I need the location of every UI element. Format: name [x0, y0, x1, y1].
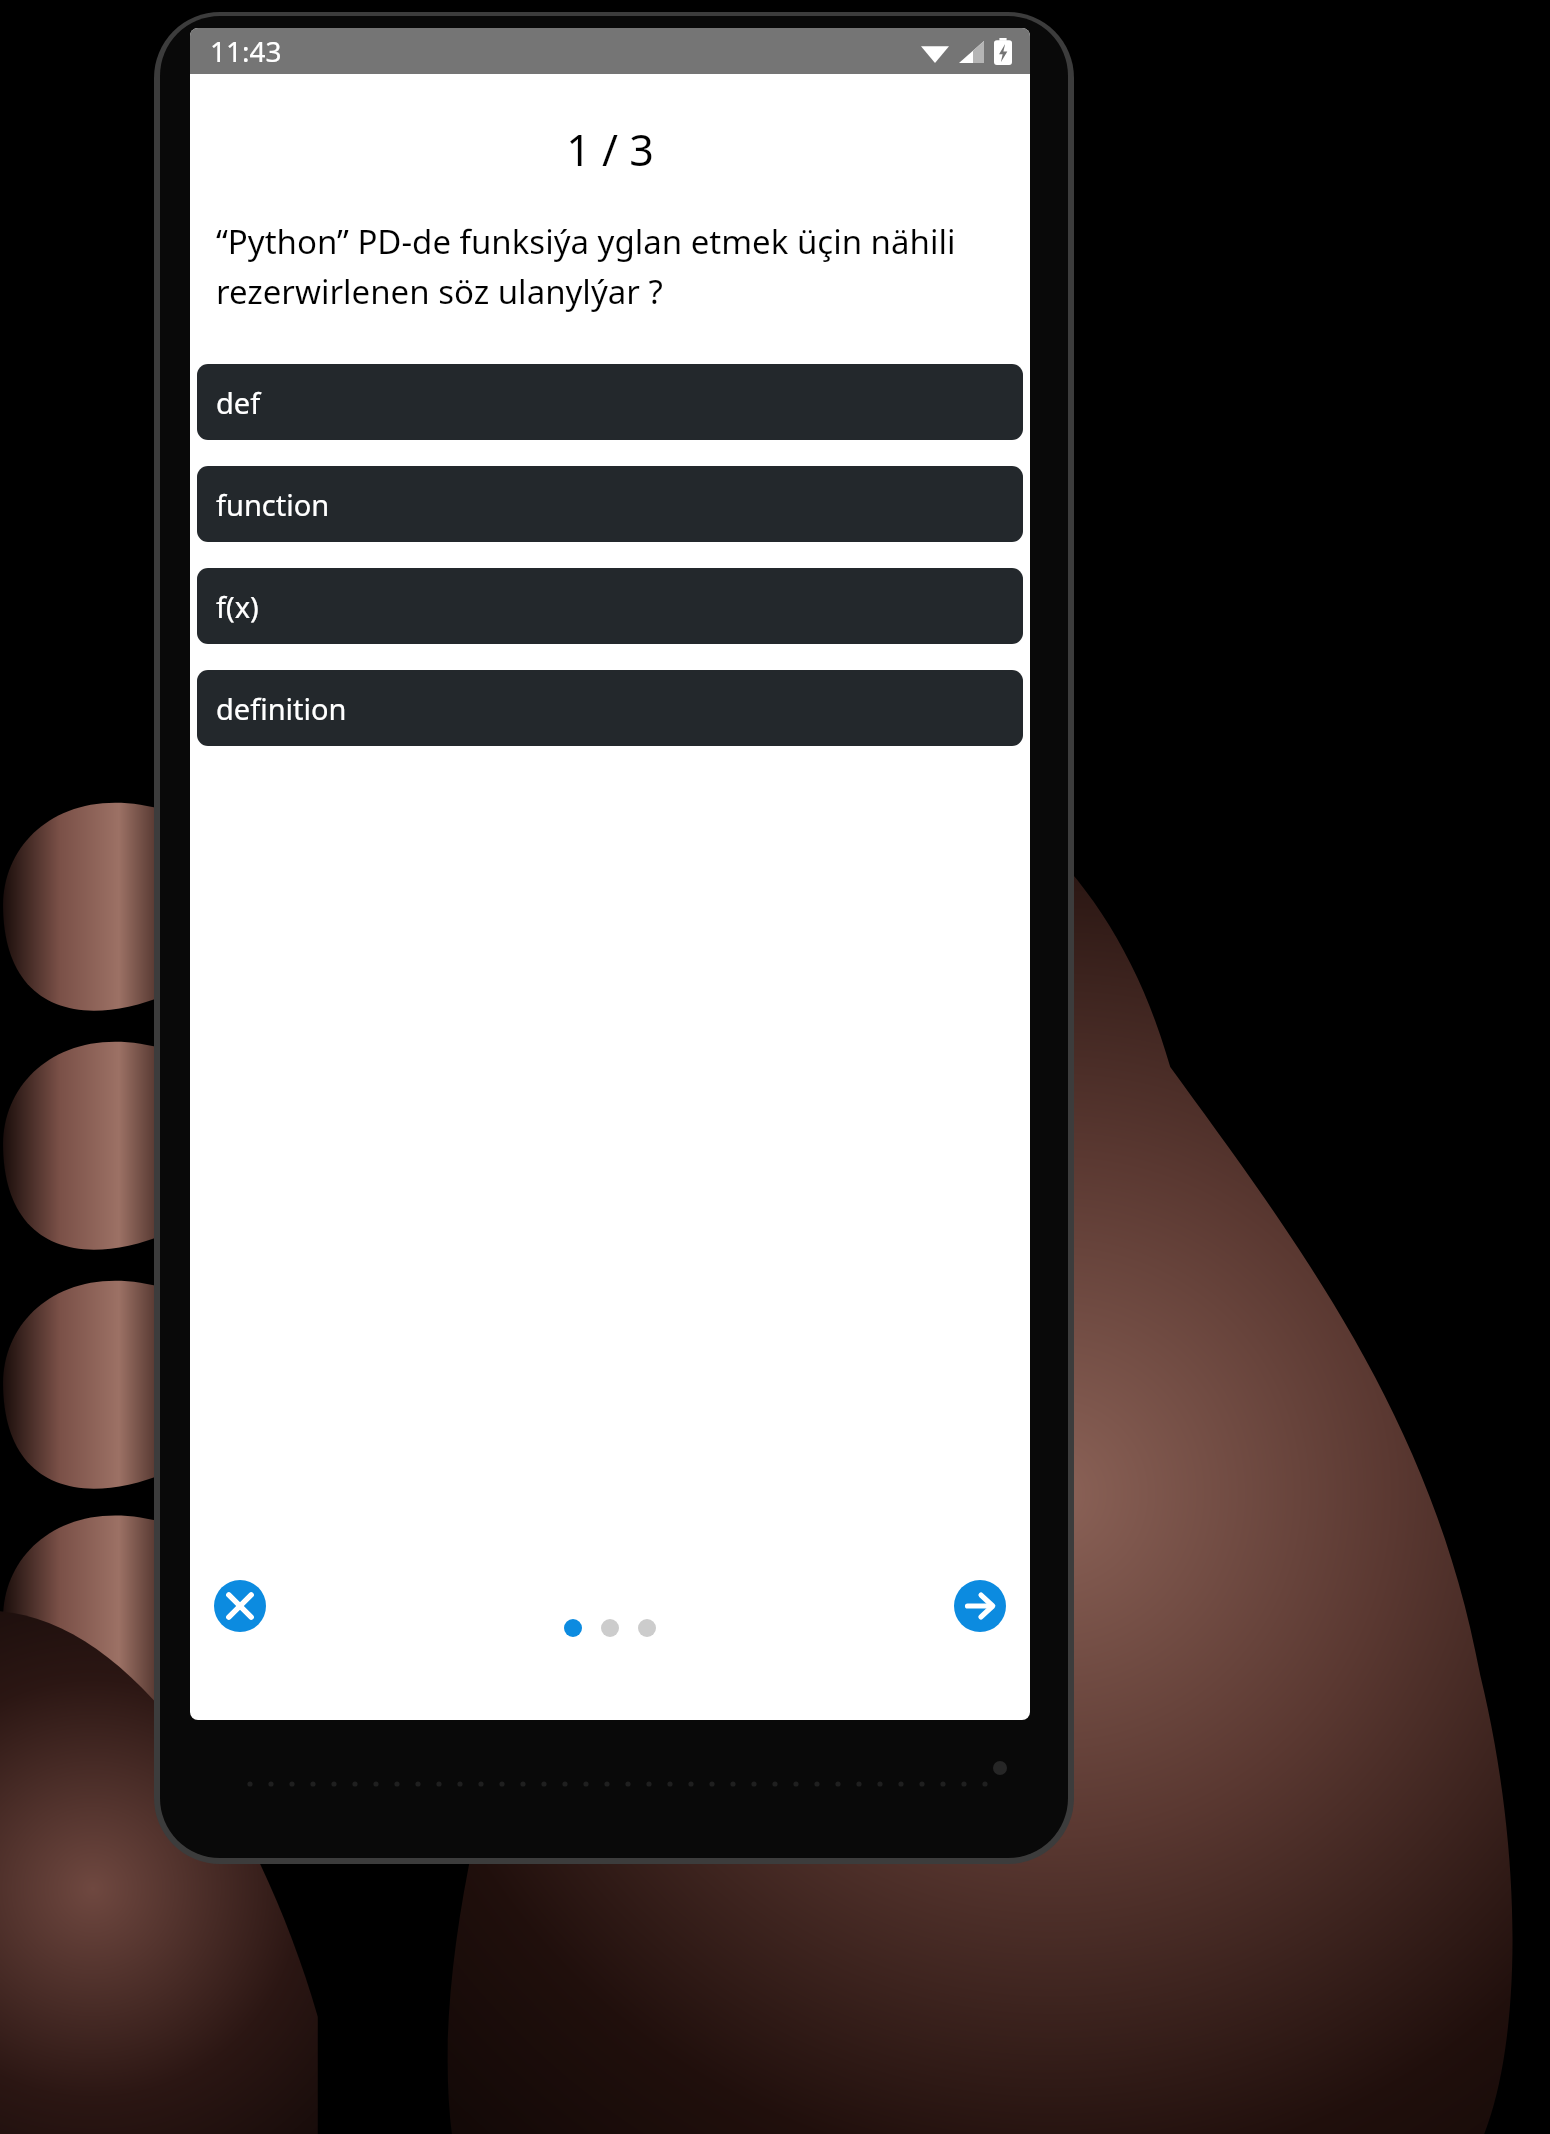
button[interactable]: Next question [954, 1580, 1006, 1632]
staticText: definition [216, 689, 347, 728]
button[interactable]: Close quiz [214, 1580, 266, 1632]
staticText: def [216, 383, 261, 422]
staticText: 1 / 3 [190, 120, 1030, 179]
button[interactable]: function [197, 466, 1023, 542]
button[interactable]: def [197, 364, 1023, 440]
staticText: f(x) [216, 587, 259, 626]
button[interactable]: definition [197, 670, 1023, 746]
staticText: “Python” PD-de funksiýa yglan etmek üçin… [216, 219, 1004, 314]
staticText: 11:43 [210, 32, 282, 70]
staticText: function [216, 485, 330, 524]
button[interactable]: f(x) [197, 568, 1023, 644]
